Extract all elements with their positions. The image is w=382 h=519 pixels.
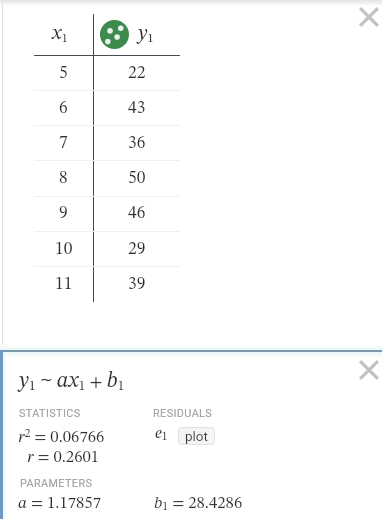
staticText: 50 [128, 170, 146, 188]
staticText: y1 ∼ ax1 + b1 [19, 370, 125, 393]
staticText: x1 [52, 23, 68, 45]
button[interactable]: Point style y sub 1 [100, 20, 129, 49]
staticText: 43 [128, 100, 146, 118]
staticText: 8 [59, 170, 68, 188]
staticText: r = 0.2601 [27, 449, 100, 466]
staticText: 5 [59, 65, 68, 83]
staticText: plot [185, 428, 208, 444]
staticText: b1 = 28.4286 [154, 495, 243, 513]
staticText: 10 [55, 241, 73, 259]
staticText: e1 [155, 425, 168, 443]
staticText: 46 [128, 205, 146, 223]
staticText: y1 [138, 23, 154, 45]
staticText: RESIDUALS [153, 407, 213, 420]
staticText: 29 [128, 241, 146, 259]
staticText: 36 [128, 135, 146, 153]
button[interactable]: plot [178, 427, 215, 445]
staticText: 7 [59, 135, 68, 153]
button[interactable]: Close [354, 355, 382, 385]
button[interactable]: Close [354, 2, 382, 32]
staticText: r2 = 0.06766 [18, 428, 105, 446]
staticText: 22 [128, 65, 146, 83]
staticText: 6 [59, 100, 68, 118]
staticText: PARAMETERS [20, 477, 93, 490]
staticText: 9 [59, 205, 68, 223]
staticText: a = 1.17857 [18, 495, 101, 512]
staticText: 39 [128, 276, 146, 294]
staticText: STATISTICS [19, 407, 81, 420]
staticText: 11 [55, 276, 73, 294]
